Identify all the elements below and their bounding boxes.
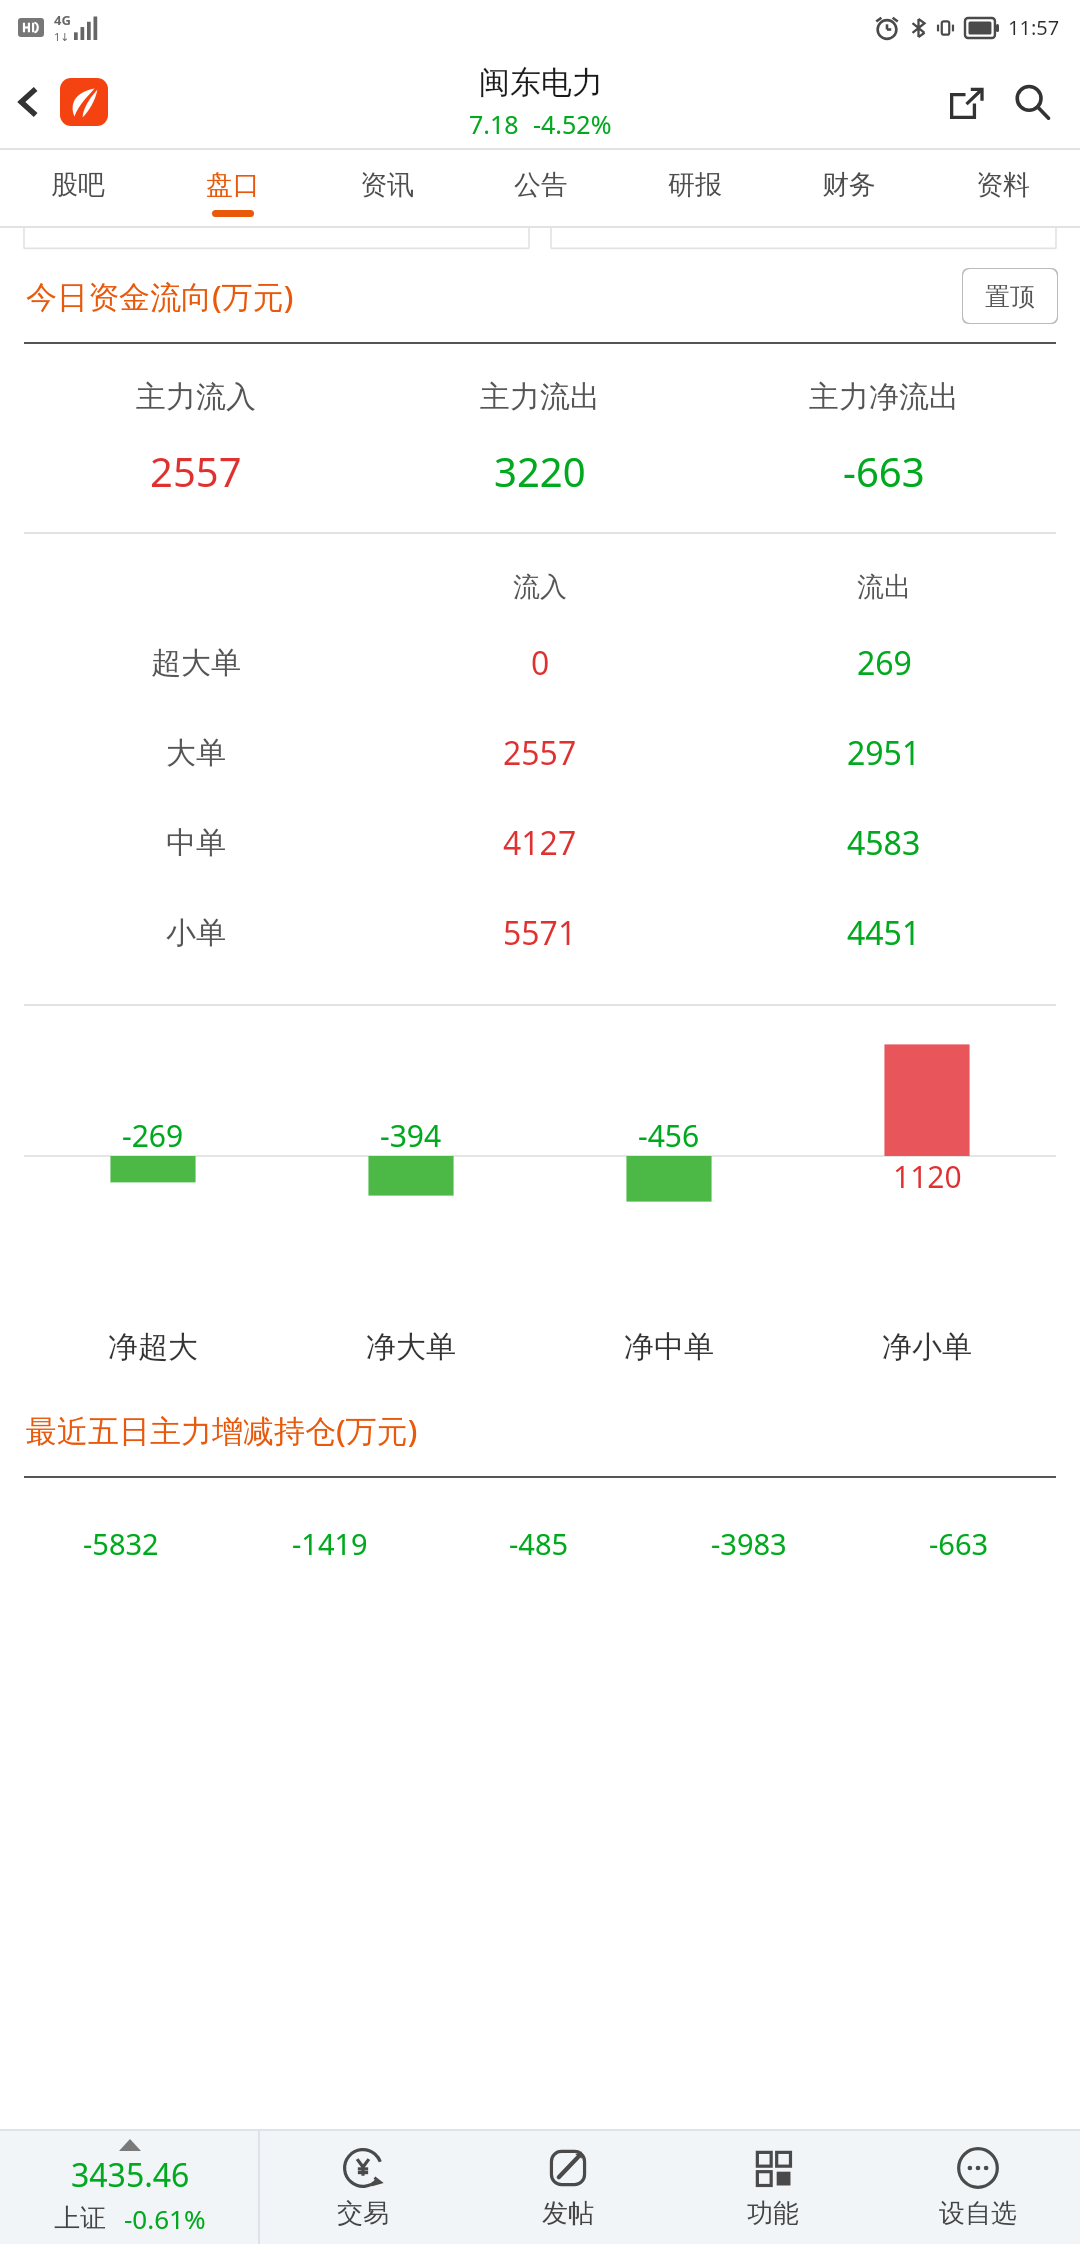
staticText: 财务 (822, 168, 876, 202)
button[interactable]: 3435.46 (0, 2131, 260, 2244)
staticText: 3220 (494, 444, 586, 498)
button[interactable]: 股吧 (0, 150, 155, 228)
staticText: -3983 (711, 1524, 787, 1563)
button[interactable]: 财务 (772, 150, 926, 228)
staticText: -663 (929, 1524, 989, 1563)
staticText: 流入 (513, 570, 567, 604)
button[interactable]: 公告 (464, 150, 618, 228)
staticText: 大单 (166, 734, 226, 772)
staticText: 0 (531, 641, 550, 685)
staticText: -0.61% (124, 2201, 206, 2236)
button[interactable]: 研报 (618, 150, 772, 228)
staticText: 11:57 (1008, 14, 1060, 41)
staticText: 净大单 (366, 1328, 456, 1366)
staticText: 置顶 (985, 281, 1035, 312)
button[interactable]: 大单 (24, 708, 1056, 798)
staticText: -663 (843, 444, 925, 498)
staticText: 净小单 (882, 1328, 972, 1366)
staticText: -5832 (83, 1524, 159, 1563)
staticText: -1419 (292, 1524, 368, 1563)
button[interactable]: 交易 (260, 2131, 465, 2244)
staticText: 7.18 (469, 107, 519, 141)
button[interactable]: 资讯 (310, 150, 464, 228)
staticText: 净超大 (108, 1328, 198, 1366)
staticText: 主力流出 (480, 378, 600, 416)
staticText: -485 (509, 1524, 569, 1563)
button[interactable]: Back (0, 74, 56, 130)
button[interactable]: App logo (60, 78, 108, 126)
button[interactable]: Share (936, 72, 996, 132)
button[interactable]: 发帖 (465, 2131, 670, 2244)
button[interactable]: 盘口 (155, 150, 310, 228)
staticText: 主力净流出 (809, 378, 959, 416)
staticText: -394 (380, 1115, 442, 1156)
staticText: -4.52% (533, 107, 612, 141)
staticText: 盘口 (206, 168, 260, 202)
staticText: 功能 (747, 2197, 799, 2230)
staticText: 4451 (847, 911, 921, 955)
staticText: 今日资金流向(万元) (26, 275, 294, 317)
staticText: 2951 (847, 731, 921, 775)
staticText: 3435.46 (71, 2153, 190, 2197)
staticText: 公告 (514, 168, 568, 202)
staticText: 净中单 (624, 1328, 714, 1366)
button[interactable]: 小单 (24, 888, 1056, 978)
staticText: 1120 (893, 1156, 962, 1197)
staticText: 发帖 (542, 2197, 594, 2230)
staticText: 主力流入 (136, 378, 256, 416)
staticText: 1↓ (54, 29, 70, 44)
staticText: 小单 (166, 914, 226, 952)
staticText: 269 (857, 641, 912, 685)
staticText: 资料 (976, 168, 1030, 202)
staticText: 中单 (166, 824, 226, 862)
staticText: -456 (638, 1115, 700, 1156)
staticText: 4G (54, 11, 71, 29)
staticText: 2557 (150, 444, 242, 498)
staticText: 5571 (503, 911, 577, 955)
button[interactable]: 置顶 (962, 268, 1058, 324)
staticText: 上证 (54, 2202, 106, 2235)
staticText: 交易 (337, 2197, 389, 2230)
button[interactable]: 设自选 (875, 2131, 1080, 2244)
staticText: 闽东电力 (479, 63, 603, 102)
button[interactable]: Search (1002, 72, 1062, 132)
staticText: 2557 (503, 731, 577, 775)
button[interactable]: 中单 (24, 798, 1056, 888)
staticText: 研报 (668, 168, 722, 202)
staticText: 最近五日主力增减持仓(万元) (26, 1409, 418, 1451)
staticText: 超大单 (151, 644, 241, 682)
staticText: 设自选 (939, 2197, 1017, 2230)
button[interactable]: 超大单 (24, 618, 1056, 708)
staticText: 股吧 (51, 168, 105, 202)
staticText: -269 (122, 1115, 184, 1156)
button[interactable]: 功能 (670, 2131, 875, 2244)
staticText: 4583 (847, 821, 921, 865)
staticText: 4127 (503, 821, 577, 865)
staticText: 流出 (857, 570, 911, 604)
staticText: 资讯 (360, 168, 414, 202)
button[interactable]: 资料 (926, 150, 1080, 228)
